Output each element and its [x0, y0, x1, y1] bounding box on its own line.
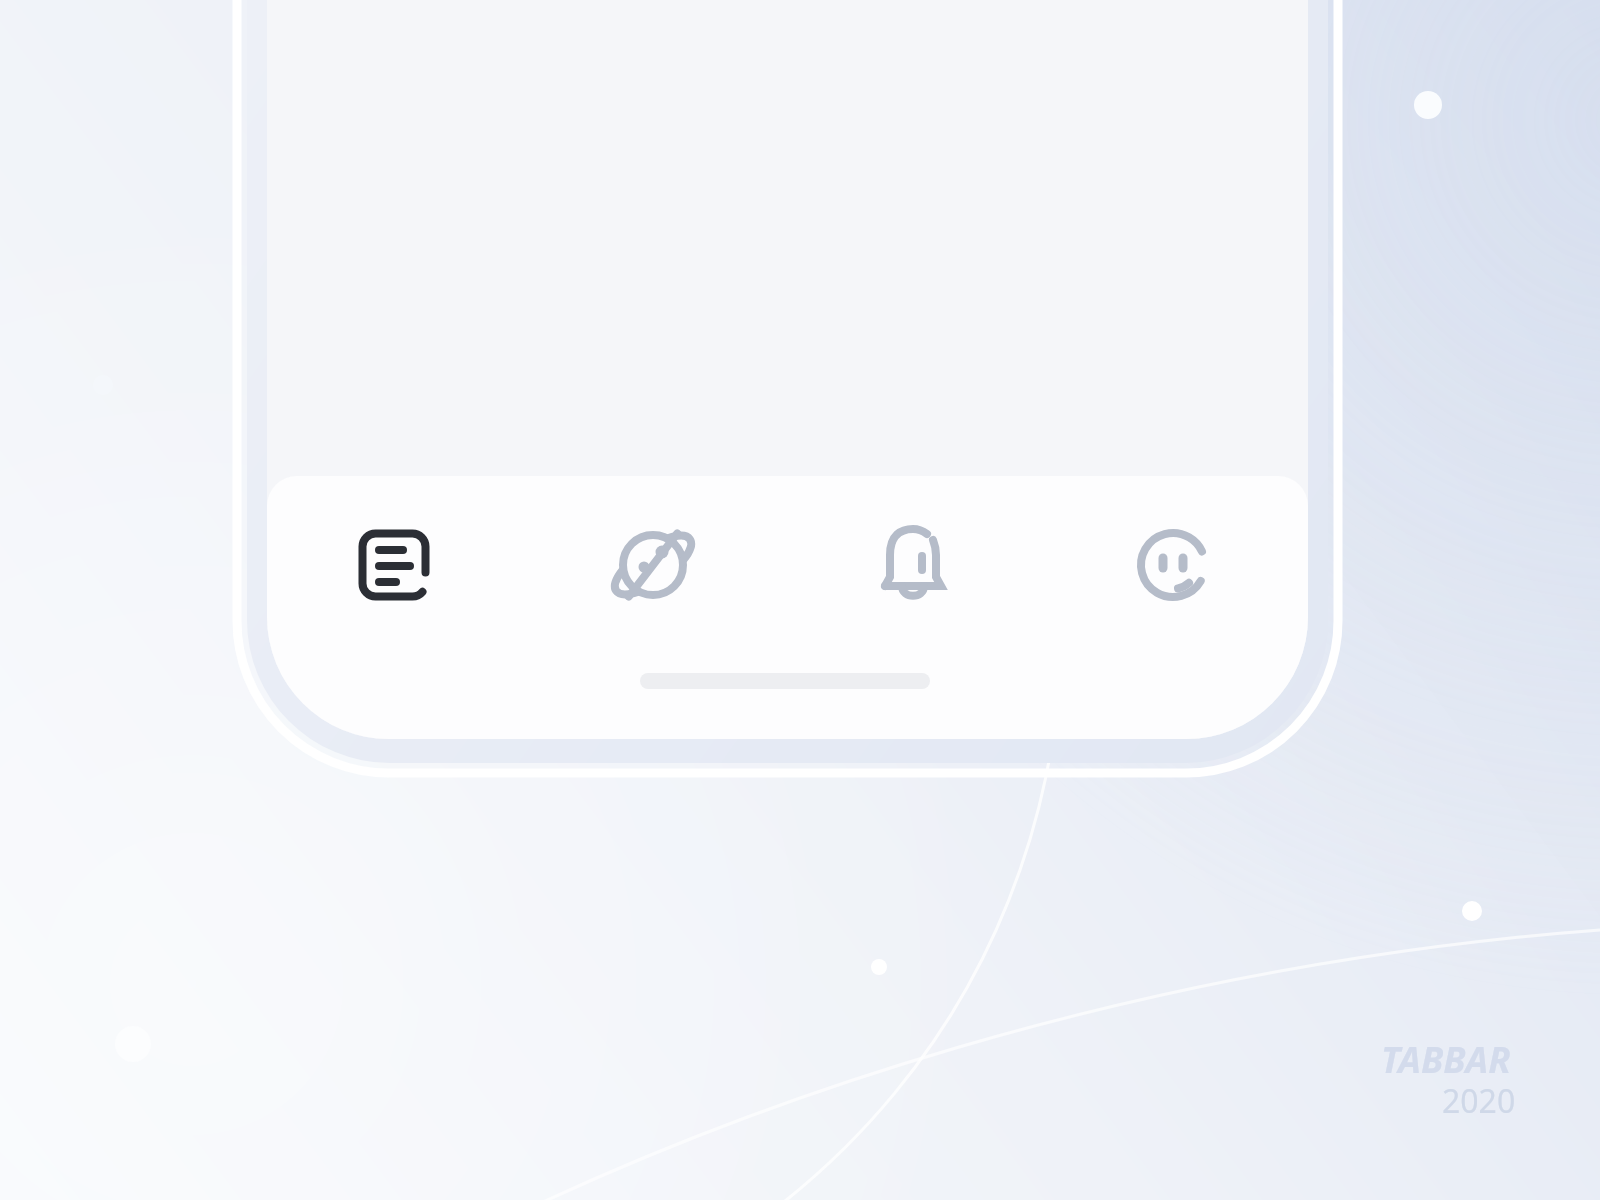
staticText: TABBAR	[1381, 1035, 1511, 1084]
button[interactable]: Explore	[614, 527, 692, 605]
button[interactable]: Profile	[1134, 527, 1212, 605]
staticText: 2020	[1442, 1079, 1516, 1123]
button[interactable]: Documents	[355, 527, 433, 605]
button[interactable]: Notifications	[874, 527, 952, 605]
